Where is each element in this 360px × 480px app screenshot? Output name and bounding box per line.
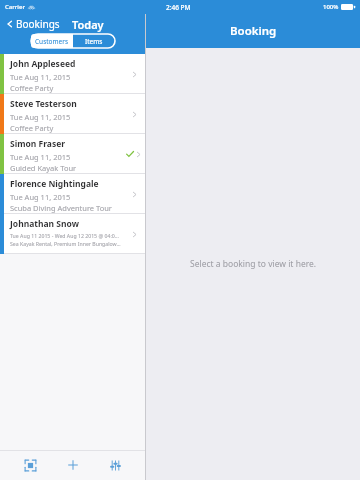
button[interactable]: John Appleseed <box>0 54 145 94</box>
staticText: John Appleseed <box>10 58 76 70</box>
staticText: Today <box>72 17 104 32</box>
staticText: Items <box>85 37 103 46</box>
staticText: Coffee Party <box>10 83 54 93</box>
staticText: Booking <box>230 23 277 39</box>
button[interactable]: Add booking <box>61 453 85 477</box>
button[interactable]: Florence Nightingale <box>0 174 145 214</box>
staticText: Customers <box>35 37 69 46</box>
button[interactable]: Bookings <box>4 15 62 33</box>
staticText: Tue Aug 11, 2015 <box>10 192 71 202</box>
staticText: Carrier <box>5 3 25 11</box>
button[interactable]: Simon Fraser <box>0 134 145 174</box>
staticText: 2:46 PM <box>166 3 191 12</box>
button[interactable]: Customers <box>31 34 72 48</box>
staticText: Tue Aug 11, 2015 <box>10 152 71 162</box>
button[interactable]: Steve Testerson <box>0 94 145 134</box>
staticText: Guided Kayak Tour <box>10 163 77 173</box>
button[interactable]: Items <box>73 34 115 48</box>
staticText: Steve Testerson <box>10 98 77 110</box>
staticText: 100% <box>323 3 339 11</box>
staticText: Scuba Diving Adventure Tour <box>10 203 112 213</box>
staticText: Tue Aug 11 2015 - Wed Aug 12 2015 @ 04:0… <box>10 232 121 239</box>
staticText: Select a booking to view it here. <box>190 258 317 270</box>
staticText: Tue Aug 11, 2015 <box>10 72 71 82</box>
staticText: Bookings <box>16 17 60 31</box>
staticText: Sea Kayak Rental, Premium Inner Bungalow… <box>10 240 121 247</box>
staticText: Tue Aug 11, 2015 <box>10 112 71 122</box>
staticText: Johnathan Snow <box>10 218 79 230</box>
button[interactable]: Johnathan Snow <box>0 214 145 254</box>
button[interactable]: Filter <box>103 453 127 477</box>
staticText: Simon Fraser <box>10 138 66 150</box>
staticText: Florence Nightingale <box>10 178 99 190</box>
staticText: Coffee Party <box>10 123 54 133</box>
button[interactable]: Scan code <box>18 453 42 477</box>
